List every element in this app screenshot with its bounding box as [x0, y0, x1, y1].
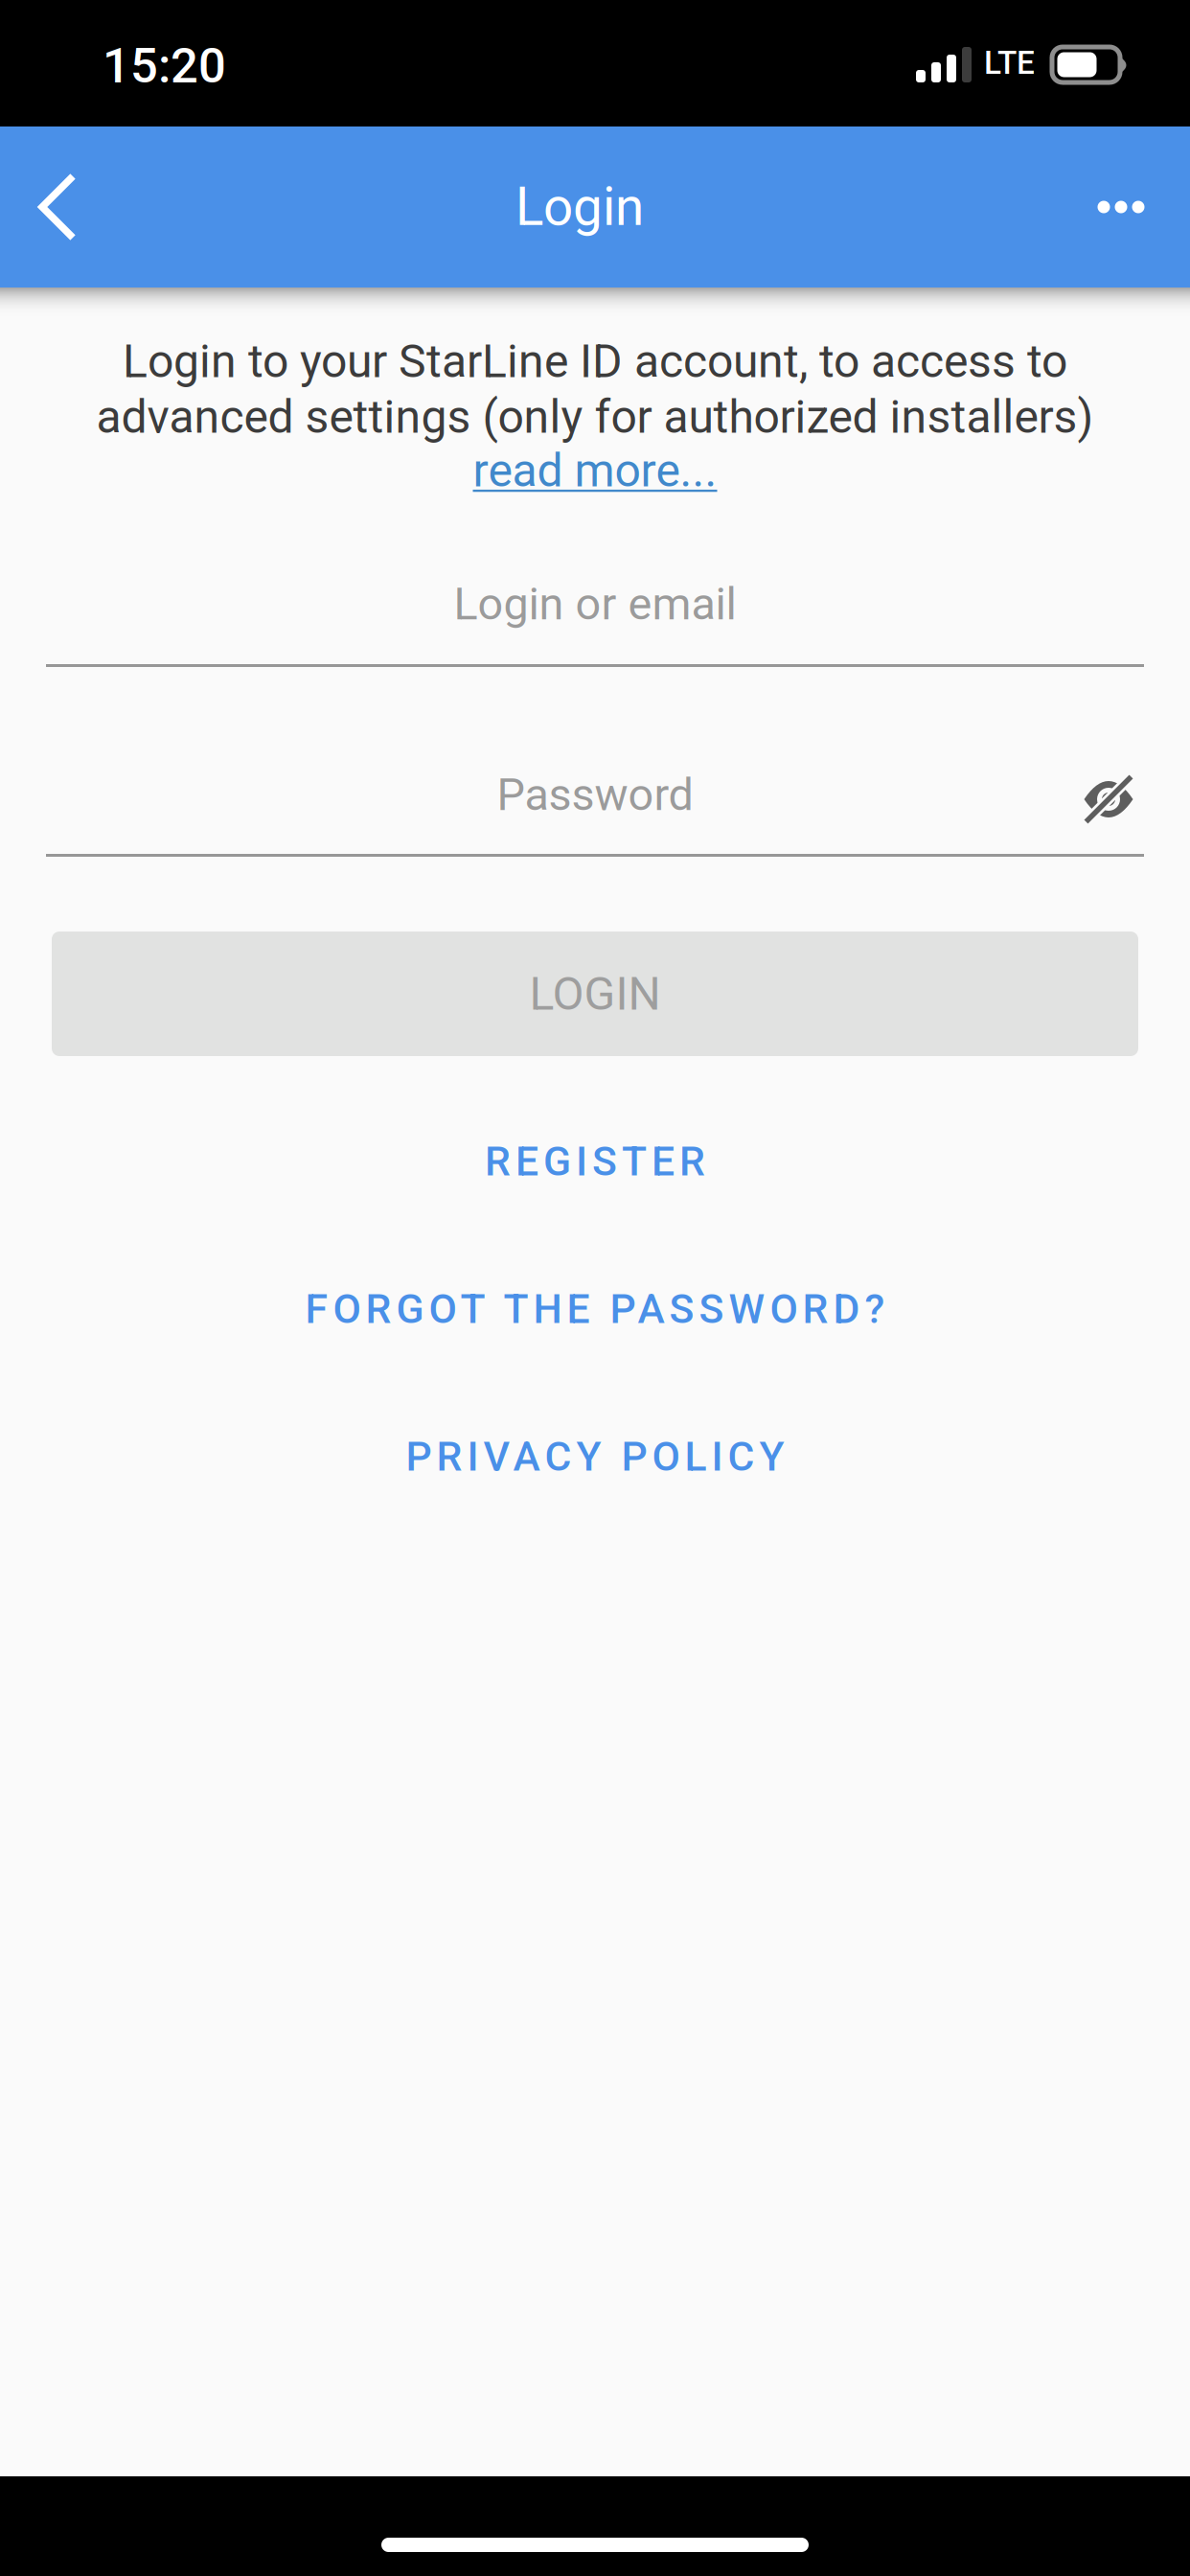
staticText: Login to your StarLine ID account, to ac… — [123, 334, 1067, 388]
staticText: advanced settings (only for authorized i… — [96, 390, 1094, 444]
staticText: read more... — [473, 444, 717, 497]
button[interactable]: REGISTER — [0, 1110, 1190, 1213]
staticText: 15:20 — [103, 37, 226, 94]
button[interactable]: More options — [1059, 126, 1183, 287]
staticText: REGISTER — [485, 1138, 705, 1185]
staticText: Login — [515, 176, 644, 238]
staticText: LOGIN — [529, 967, 661, 1021]
button[interactable]: PRIVACY POLICY — [0, 1405, 1190, 1508]
staticText: PRIVACY POLICY — [406, 1433, 784, 1481]
button[interactable]: Show password — [1061, 751, 1156, 847]
button[interactable]: FORGOT THE PASSWORD? — [0, 1257, 1190, 1361]
staticText: LTE — [984, 44, 1035, 82]
button[interactable]: Back — [0, 126, 115, 287]
staticText: Password — [497, 769, 693, 821]
button[interactable]: read more... — [413, 432, 777, 509]
button[interactable]: LOGIN — [52, 931, 1138, 1056]
staticText: FORGOT THE PASSWORD? — [305, 1285, 885, 1333]
staticText: Login or email — [454, 578, 736, 630]
